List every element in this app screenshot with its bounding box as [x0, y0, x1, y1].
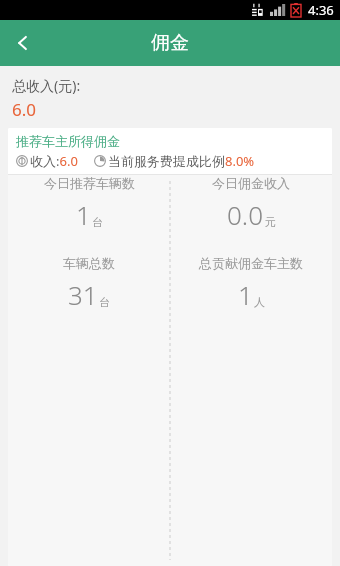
staticText: 0.0: [227, 197, 264, 232]
staticText: 31: [68, 277, 98, 312]
staticText: 1: [238, 277, 253, 312]
button[interactable]: Back: [0, 20, 46, 66]
staticText: 佣金: [151, 31, 189, 55]
staticText: 总收入(元):: [12, 76, 81, 95]
staticText: 台: [99, 295, 110, 309]
staticText: 台: [92, 215, 103, 229]
staticText: 推荐车主所得佣金: [16, 133, 120, 149]
staticText: 元: [265, 215, 276, 229]
staticText: 6.0: [12, 98, 37, 121]
staticText: 收入:6.0: [30, 152, 78, 170]
staticText: 1: [76, 197, 91, 232]
staticText: 今日佣金收入: [212, 175, 290, 191]
staticText: 4:36: [308, 1, 334, 19]
staticText: 当前服务费提成比例8.0%: [108, 152, 255, 170]
staticText: 车辆总数: [63, 255, 115, 271]
button[interactable]: 推荐车主所得佣金: [8, 128, 332, 566]
staticText: 人: [254, 295, 265, 309]
staticText: 今日推荐车辆数: [44, 175, 135, 191]
staticText: 总贡献佣金车主数: [199, 255, 303, 271]
